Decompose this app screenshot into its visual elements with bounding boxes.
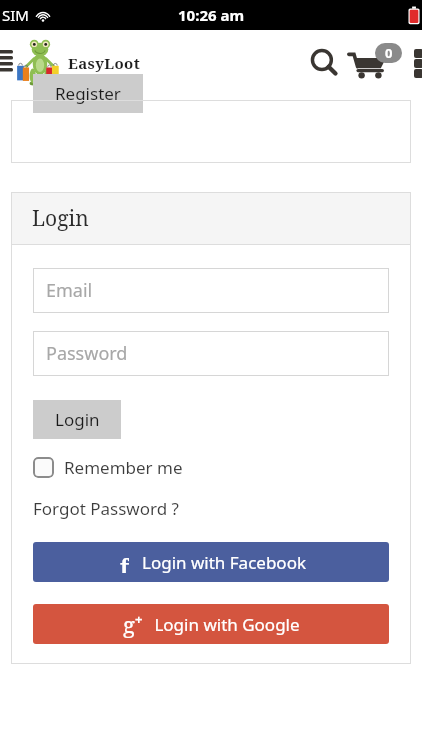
staticText: SIM — [2, 5, 29, 25]
staticText: Register — [55, 82, 121, 105]
button[interactable]: Remember me — [33, 456, 183, 479]
button[interactable]: Login — [33, 400, 121, 439]
button[interactable]: f — [33, 542, 389, 582]
button[interactable]: More options — [409, 43, 422, 83]
button[interactable]: Forgot Password ? — [33, 497, 179, 520]
staticText: Password — [46, 341, 128, 366]
staticText: Remember me — [64, 456, 183, 479]
button[interactable]: Menu — [0, 43, 14, 83]
staticText: Login with Facebook — [142, 551, 306, 574]
button[interactable]: EasyLoot — [14, 35, 141, 91]
staticText: g — [123, 609, 135, 639]
button[interactable]: Cart, 0 items — [346, 41, 404, 85]
staticText: Email — [46, 278, 93, 303]
button[interactable]: Register — [33, 74, 143, 113]
staticText: Login — [32, 204, 89, 233]
button[interactable]: Search — [302, 41, 346, 85]
staticText: f — [120, 551, 129, 573]
staticText: Login — [55, 408, 100, 431]
button[interactable]: g — [33, 604, 389, 644]
staticText: 0 — [385, 44, 393, 62]
staticText: 10:26 am — [178, 5, 245, 25]
button[interactable]: Password — [33, 331, 389, 376]
staticText: Login with Google — [154, 613, 300, 636]
staticText: EasyLoot — [68, 53, 141, 73]
staticText: + — [135, 610, 143, 628]
button[interactable]: Email — [33, 268, 389, 313]
staticText: Forgot Password ? — [33, 497, 179, 520]
